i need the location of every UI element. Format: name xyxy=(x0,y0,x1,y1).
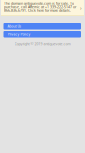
button[interactable]: About Us xyxy=(3,23,81,29)
staticText: Copyright © 2019 antiguevote.com xyxy=(14,41,70,46)
button[interactable]: Privacy Policy xyxy=(3,31,81,37)
button[interactable]: The domain antiguevote.com is for sale. … xyxy=(1,0,84,16)
staticText: The domain antiguevote.com is for sale. … xyxy=(4,1,76,13)
staticText: About Us xyxy=(7,24,21,28)
staticText: › xyxy=(80,4,82,12)
staticText: Privacy Policy xyxy=(7,32,30,36)
